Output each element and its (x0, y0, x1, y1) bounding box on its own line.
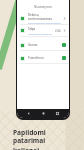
button[interactable]: Garsas (17, 40, 69, 50)
staticText: Talpa (28, 27, 36, 31)
other: Open (63, 17, 66, 20)
other: Pranešimai toggle (62, 56, 66, 60)
button[interactable]: Home (41, 111, 46, 116)
button[interactable]: Back (26, 111, 31, 116)
button[interactable]: Recents (55, 111, 60, 116)
staticText: Nustatymai (34, 5, 52, 9)
staticText: Papildomi patarimai (13, 128, 78, 145)
staticText: 4 Gb (55, 29, 61, 33)
button[interactable]: Debesų sinchronizavimas (17, 13, 69, 24)
button[interactable]: Talpa (17, 25, 69, 36)
other: Open (63, 29, 66, 32)
staticText: Sinchronizuoti automatiškai (28, 21, 61, 24)
staticText: kelionei. (13, 146, 42, 150)
staticText: Garsas (28, 43, 38, 47)
staticText: Pranešimai (28, 56, 44, 60)
other: Garsas toggle (62, 43, 66, 47)
button[interactable]: Pranešimai (17, 53, 69, 63)
staticText: Debesų sinchronizavimas (28, 13, 63, 20)
staticText: Naudojama atmintis (28, 32, 52, 35)
